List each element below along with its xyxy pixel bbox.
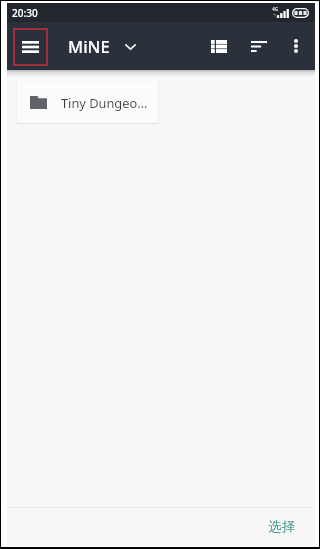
staticText: 选择: [268, 518, 295, 535]
staticText: 4G: [272, 6, 279, 13]
button[interactable]: 选择: [263, 513, 300, 541]
button[interactable]: More options: [278, 28, 314, 64]
staticText: MiNE: [68, 35, 110, 57]
button[interactable]: Sort: [241, 28, 277, 64]
button[interactable]: Open navigation drawer: [13, 27, 48, 65]
staticText: Tiny Dungeo…: [61, 94, 148, 111]
button[interactable]: Tiny Dungeo…: [17, 81, 158, 123]
button[interactable]: Change library: [118, 34, 142, 58]
staticText: 20:30: [12, 6, 38, 20]
button[interactable]: View mode: [201, 28, 237, 64]
